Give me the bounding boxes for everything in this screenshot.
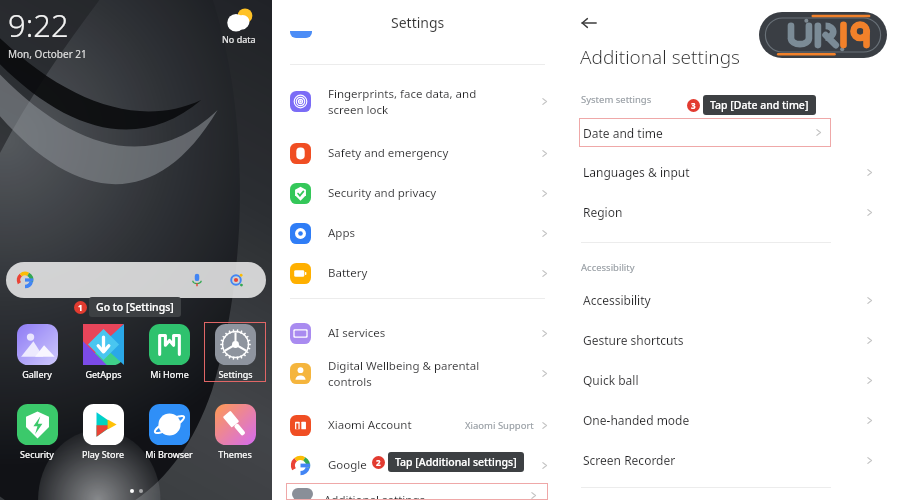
staticText: Go to [Settings] (96, 300, 174, 314)
staticText: Security (20, 448, 54, 460)
staticText: Additional settings (580, 44, 740, 70)
button[interactable]: Security and privacy (272, 176, 563, 210)
other: Google Lens (228, 272, 244, 288)
staticText: No data (222, 33, 256, 45)
staticText: Settings (218, 368, 253, 380)
button[interactable]: Xiaomi Account (272, 408, 563, 442)
staticText: AI services (328, 325, 540, 341)
staticText: Xiaomi Account (328, 417, 465, 433)
button[interactable]: Digital Wellbeing & parental controls (272, 352, 563, 394)
button[interactable]: Screen Recorder (563, 448, 900, 472)
button[interactable]: Weather (222, 8, 256, 45)
button[interactable]: Gallery (6, 322, 68, 382)
button[interactable]: Languages & input (563, 160, 900, 184)
staticText: Tap [Additional settings] (395, 455, 517, 469)
button[interactable]: Settings (204, 322, 266, 382)
staticText: Mi Home (150, 368, 189, 380)
staticText: Date and time (583, 125, 663, 141)
button[interactable]: Google (272, 448, 563, 482)
staticText: Tap [Date and time] (710, 98, 809, 112)
staticText: Quick ball (583, 372, 865, 388)
staticText: Gesture shortcuts (583, 332, 865, 348)
staticText: Mon, October 21 (8, 47, 87, 61)
button[interactable]: Date and time (579, 118, 831, 147)
staticText: One-handed mode (583, 412, 865, 428)
staticText: Digital Wellbeing & parental controls (328, 358, 540, 389)
staticText: 9:22 (8, 4, 69, 46)
button[interactable]: Back (579, 13, 599, 33)
staticText: GetApps (85, 368, 122, 380)
staticText: Xiaomi Support (465, 419, 534, 432)
staticText: Settings (391, 13, 445, 32)
staticText: Mi Browser (145, 448, 193, 460)
button[interactable]: GetApps (72, 322, 134, 382)
staticText: 1 (78, 302, 83, 313)
staticText: Accessibility (581, 261, 635, 274)
staticText: Themes (218, 448, 252, 460)
button[interactable]: Battery (272, 256, 563, 290)
button[interactable]: Fingerprints, face data, and screen lock (272, 80, 563, 122)
button[interactable]: Additional settings (286, 483, 548, 500)
button[interactable]: Mi Browser (138, 402, 200, 462)
staticText: System settings (581, 93, 652, 106)
button[interactable]: Safety and emergency (272, 136, 563, 170)
staticText: Languages & input (583, 164, 865, 180)
other: UR19 logo (759, 12, 887, 58)
button[interactable]: Quick ball (563, 368, 900, 392)
button[interactable]: Apps (272, 216, 563, 250)
button[interactable]: Region (563, 200, 900, 224)
button[interactable]: AI services (272, 316, 563, 350)
staticText: Security and privacy (328, 185, 540, 201)
staticText: Play Store (82, 448, 124, 460)
staticText: Region (583, 204, 865, 220)
button[interactable]: Themes (204, 402, 266, 462)
staticText: Fingerprints, face data, and screen lock (328, 86, 540, 117)
staticText: Accessibility (583, 292, 865, 308)
staticText: 2 (376, 457, 381, 468)
staticText: Battery (328, 265, 540, 281)
other: Voice search (190, 273, 204, 287)
button[interactable]: One-handed mode (563, 408, 900, 432)
staticText: Safety and emergency (328, 145, 540, 161)
button[interactable]: Voice search (6, 262, 266, 298)
staticText: Gallery (22, 368, 52, 380)
staticText: Additional settings (324, 492, 426, 500)
button[interactable]: Play Store (72, 402, 134, 462)
button[interactable]: Accessibility (563, 288, 900, 312)
button[interactable]: Security (6, 402, 68, 462)
staticText: Google (328, 457, 540, 473)
staticText: Screen Recorder (583, 452, 865, 468)
staticText: 3 (691, 100, 696, 111)
staticText: Apps (328, 225, 540, 241)
button[interactable]: Gesture shortcuts (563, 328, 900, 352)
button[interactable]: Mi Home (138, 322, 200, 382)
